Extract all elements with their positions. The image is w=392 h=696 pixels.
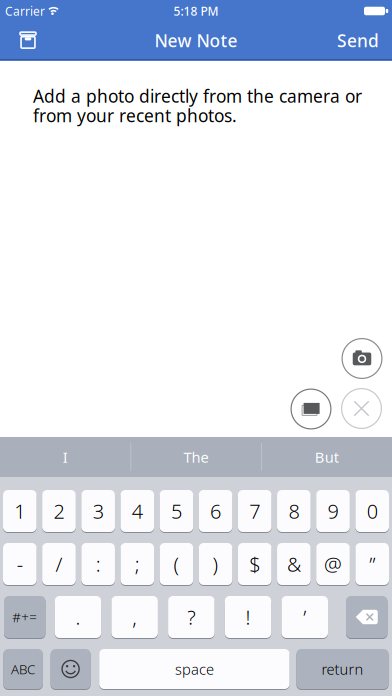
button[interactable]: Close <box>341 388 382 429</box>
button[interactable]: 1 <box>3 489 37 532</box>
button[interactable]: Send <box>337 22 379 59</box>
button[interactable]: #+= <box>4 595 45 638</box>
staticText: . <box>75 604 80 630</box>
staticText: 7 <box>249 498 260 524</box>
button[interactable]: Delete <box>346 595 387 638</box>
staticText: 0 <box>367 498 378 524</box>
staticText: ” <box>369 551 375 577</box>
staticText: New Note <box>154 29 237 52</box>
staticText: ) <box>213 551 219 577</box>
button[interactable]: ! <box>225 595 271 638</box>
staticText: 4 <box>132 498 143 524</box>
staticText: Send <box>337 29 379 52</box>
button[interactable]: ’ <box>281 595 328 638</box>
button[interactable]: 4 <box>120 489 154 532</box>
button[interactable]: Emoji <box>51 648 91 689</box>
staticText: I <box>63 447 68 467</box>
staticText: @ <box>324 551 342 577</box>
button[interactable]: ( <box>160 542 193 585</box>
button[interactable]: Take Photo <box>341 338 382 379</box>
staticText: ( <box>173 551 179 577</box>
staticText: - <box>17 551 23 577</box>
staticText: / <box>55 551 62 577</box>
staticText: & <box>287 551 301 577</box>
staticText: $ <box>249 551 260 577</box>
staticText: 6 <box>210 498 221 524</box>
button[interactable]: 9 <box>316 489 350 532</box>
button[interactable]: return <box>296 648 389 689</box>
staticText: The <box>183 447 208 467</box>
button[interactable]: The <box>136 437 256 477</box>
staticText: Add a photo directly from the camera or … <box>33 84 362 127</box>
staticText: 3 <box>93 498 104 524</box>
button[interactable]: 3 <box>81 489 115 532</box>
button[interactable]: / <box>42 542 76 585</box>
button[interactable]: 8 <box>277 489 311 532</box>
staticText: ’ <box>303 604 306 630</box>
button[interactable]: space <box>99 648 290 689</box>
staticText: But <box>315 447 339 467</box>
button[interactable]: But <box>267 437 387 477</box>
button[interactable]: I <box>5 437 125 477</box>
staticText: ! <box>246 604 251 630</box>
staticText: ABC <box>11 660 35 678</box>
button[interactable]: & <box>277 542 311 585</box>
button[interactable]: 0 <box>355 489 389 532</box>
staticText: #+= <box>12 608 37 626</box>
button[interactable]: Notes <box>11 21 45 59</box>
button[interactable]: ? <box>168 595 215 638</box>
button[interactable]: , <box>111 595 158 638</box>
staticText: 9 <box>327 498 338 524</box>
button[interactable]: . <box>55 595 101 638</box>
button[interactable]: 6 <box>199 489 232 532</box>
button[interactable]: @ <box>316 542 350 585</box>
staticText: 5 <box>171 498 182 524</box>
button[interactable]: $ <box>238 542 271 585</box>
staticText: ? <box>187 604 195 630</box>
button[interactable]: 2 <box>42 489 76 532</box>
staticText: 2 <box>53 498 64 524</box>
button[interactable]: - <box>3 542 37 585</box>
staticText: ; <box>135 551 140 577</box>
button[interactable]: ) <box>199 542 232 585</box>
staticText: , <box>132 604 137 630</box>
staticText: 5:18 PM <box>173 3 218 19</box>
staticText: 8 <box>288 498 299 524</box>
button[interactable]: : <box>81 542 115 585</box>
staticText: return <box>321 659 363 679</box>
button[interactable]: 5 <box>160 489 193 532</box>
button[interactable]: 7 <box>238 489 271 532</box>
button[interactable]: ” <box>355 542 389 585</box>
staticText: Carrier <box>5 3 45 19</box>
staticText: : <box>96 551 101 577</box>
button[interactable]: ; <box>120 542 154 585</box>
button[interactable]: Photo Library <box>290 388 331 429</box>
staticText: 1 <box>14 498 25 524</box>
button[interactable]: ABC <box>3 648 43 689</box>
staticText: space <box>175 659 214 679</box>
